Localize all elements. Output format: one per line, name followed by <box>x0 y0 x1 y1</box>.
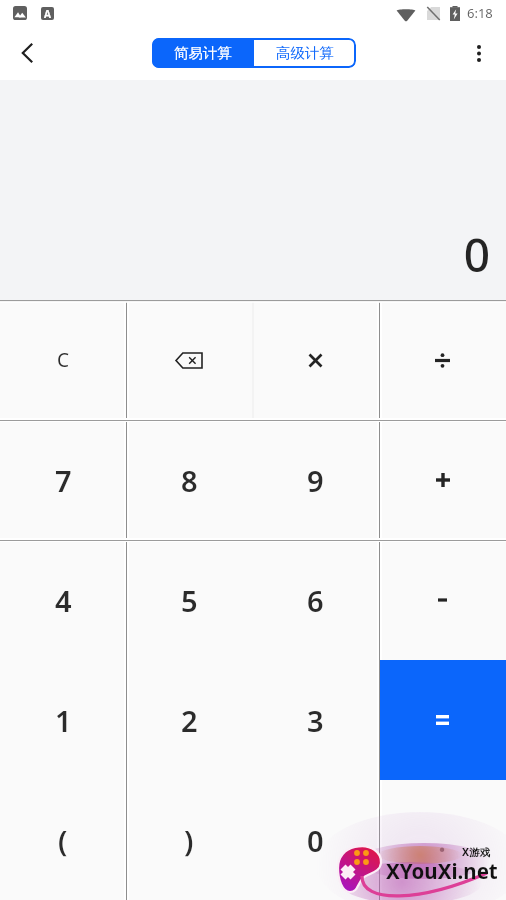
staticText: 6 <box>307 581 324 620</box>
other: Backspace <box>126 300 252 420</box>
staticText: 9 <box>307 461 324 500</box>
button[interactable]: 4 <box>0 540 126 660</box>
staticText: 4 <box>55 581 72 620</box>
button[interactable] <box>379 540 506 660</box>
staticText: 0 <box>307 821 324 860</box>
button[interactable]: 3 <box>252 660 379 780</box>
staticText: 0 <box>463 223 490 286</box>
staticText: X游戏 <box>462 845 491 859</box>
staticText: A <box>44 7 51 20</box>
button[interactable]: 1 <box>0 660 126 780</box>
staticText: C <box>57 347 70 373</box>
button[interactable] <box>379 300 506 420</box>
button[interactable]: 8 <box>126 420 252 540</box>
staticText: 简易计算 <box>174 44 232 62</box>
staticText: 1 <box>55 701 72 740</box>
staticText: XYouXi.net <box>386 857 498 885</box>
button[interactable]: 简易计算 <box>152 38 254 68</box>
button[interactable]: 0 <box>252 780 379 900</box>
staticText: 高级计算 <box>276 44 334 62</box>
staticText: . <box>438 821 447 860</box>
button[interactable]: 高级计算 <box>254 38 356 68</box>
staticText: ) <box>184 821 194 860</box>
staticText: ( <box>58 821 68 860</box>
button[interactable] <box>252 300 379 420</box>
staticText: 6:18 <box>467 4 493 22</box>
button[interactable]: . <box>379 780 506 900</box>
button[interactable]: 2 <box>126 660 252 780</box>
button[interactable]: Backspace <box>126 300 252 420</box>
staticText: 3 <box>307 701 324 740</box>
button[interactable]: More options <box>452 26 506 80</box>
staticText: 5 <box>181 581 198 620</box>
button[interactable]: C <box>0 300 126 420</box>
button[interactable]: Equals <box>379 660 506 780</box>
staticText: 7 <box>55 461 72 500</box>
button[interactable]: ( <box>0 780 126 900</box>
staticText: 8 <box>181 461 198 500</box>
button[interactable]: ) <box>126 780 252 900</box>
button[interactable]: Back <box>0 26 56 80</box>
button[interactable]: 7 <box>0 420 126 540</box>
button[interactable] <box>379 420 506 540</box>
button[interactable]: 6 <box>252 540 379 660</box>
button[interactable]: 5 <box>126 540 252 660</box>
staticText: 2 <box>181 701 198 740</box>
button[interactable]: 9 <box>252 420 379 540</box>
button[interactable]: Equals <box>379 660 506 780</box>
